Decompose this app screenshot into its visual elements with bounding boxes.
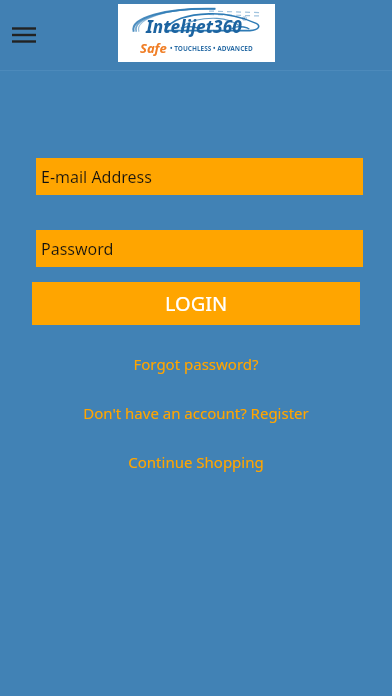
staticText: • TOUCHLESS • ADVANCED xyxy=(170,44,253,53)
button[interactable]: Don't have an account? Register xyxy=(0,401,392,425)
staticText: Continue Shopping xyxy=(128,452,264,472)
staticText: Safe xyxy=(140,39,167,57)
staticText: LOGIN xyxy=(165,290,228,317)
button[interactable]: Forgot password? xyxy=(0,352,392,376)
button[interactable]: Open navigation menu xyxy=(6,17,42,53)
button[interactable]: LOGIN xyxy=(32,282,360,325)
staticText: Intelijet360 xyxy=(146,15,242,38)
button[interactable]: Intelijet360 xyxy=(118,4,275,62)
button[interactable]: Continue Shopping xyxy=(0,450,392,474)
staticText: ® xyxy=(242,15,247,23)
staticText: E-mail Address xyxy=(41,166,152,188)
button[interactable]: Password xyxy=(36,230,363,267)
staticText: Forgot password? xyxy=(133,354,259,374)
staticText: Password xyxy=(41,238,114,260)
staticText: Don't have an account? Register xyxy=(83,403,309,423)
button[interactable]: E-mail Address xyxy=(36,158,363,195)
